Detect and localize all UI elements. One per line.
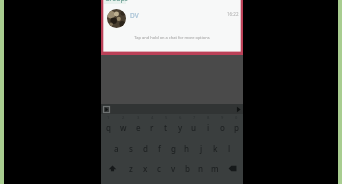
staticText: 3 bbox=[137, 115, 140, 120]
button[interactable]: 5 bbox=[159, 114, 173, 135]
button[interactable]: 6 bbox=[173, 114, 187, 135]
button[interactable]: k bbox=[208, 135, 222, 156]
staticText: DV bbox=[130, 11, 139, 20]
button[interactable]: c bbox=[152, 156, 166, 177]
button[interactable]: More suggestions bbox=[234, 105, 242, 113]
staticText: h bbox=[184, 143, 190, 154]
button[interactable]: m bbox=[208, 156, 222, 177]
staticText: 16:22 bbox=[227, 11, 239, 17]
staticText: Groups bbox=[105, 0, 128, 3]
staticText: u bbox=[191, 122, 197, 133]
button[interactable]: a bbox=[109, 135, 124, 156]
button[interactable]: f bbox=[152, 135, 166, 156]
staticText: s bbox=[129, 143, 133, 154]
staticText: p bbox=[234, 122, 239, 133]
button[interactable]: 9 bbox=[215, 114, 229, 135]
button[interactable]: b bbox=[180, 156, 194, 177]
button[interactable]: s bbox=[124, 135, 138, 156]
staticText: d bbox=[143, 143, 148, 154]
staticText: c bbox=[157, 163, 161, 174]
staticText: q bbox=[106, 122, 111, 133]
button[interactable]: 4 bbox=[145, 114, 159, 135]
staticText: r bbox=[150, 122, 154, 133]
button[interactable]: 1 bbox=[101, 114, 116, 135]
button[interactable]: Backspace bbox=[222, 156, 243, 177]
button[interactable]: Expand suggestions bbox=[102, 105, 110, 113]
button[interactable]: 2 bbox=[116, 114, 131, 135]
button[interactable]: j bbox=[194, 135, 208, 156]
staticText: n bbox=[198, 163, 204, 174]
staticText: 9 bbox=[221, 115, 224, 120]
staticText: t bbox=[164, 122, 168, 133]
staticText: i bbox=[207, 122, 210, 133]
staticText: v bbox=[171, 163, 176, 174]
button[interactable]: x bbox=[138, 156, 152, 177]
button[interactable]: 0 bbox=[229, 114, 243, 135]
staticText: e bbox=[136, 122, 141, 133]
button[interactable]: 3 bbox=[131, 114, 145, 135]
staticText: b bbox=[185, 163, 190, 174]
staticText: f bbox=[158, 143, 161, 154]
button[interactable]: Groups bbox=[101, 0, 243, 55]
staticText: g bbox=[171, 143, 176, 154]
staticText: m bbox=[211, 163, 219, 174]
staticText: l bbox=[228, 143, 231, 154]
button[interactable]: d bbox=[138, 135, 152, 156]
staticText: o bbox=[220, 122, 225, 133]
button[interactable]: v bbox=[166, 156, 180, 177]
staticText: w bbox=[120, 122, 127, 133]
staticText: 8 bbox=[207, 115, 210, 120]
button[interactable]: Shift bbox=[101, 156, 123, 177]
staticText: Tap and hold on a chat for more options bbox=[101, 35, 243, 40]
staticText: 4 bbox=[151, 115, 154, 120]
staticText: j bbox=[200, 143, 203, 154]
button[interactable]: 7 bbox=[187, 114, 201, 135]
staticText: a bbox=[114, 143, 119, 154]
staticText: 2 bbox=[122, 115, 125, 120]
button[interactable]: z bbox=[123, 156, 138, 177]
staticText: y bbox=[178, 122, 183, 133]
staticText: z bbox=[129, 163, 133, 174]
button[interactable]: g bbox=[166, 135, 180, 156]
staticText: k bbox=[213, 143, 218, 154]
button[interactable]: n bbox=[194, 156, 208, 177]
staticText: x bbox=[143, 163, 148, 174]
button[interactable]: h bbox=[180, 135, 194, 156]
